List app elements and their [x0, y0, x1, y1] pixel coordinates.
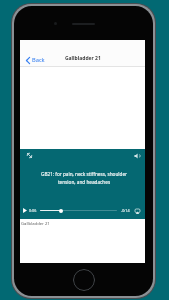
button[interactable]: Volume [134, 153, 141, 159]
staticText: Back [32, 56, 45, 64]
button[interactable]: Expand [26, 152, 33, 159]
staticText: Gallbladder 21 [65, 55, 101, 62]
staticText: -0:14 [121, 208, 130, 213]
button[interactable]: Home [73, 269, 95, 291]
staticText: GB21: for pain, neck stiffness, shoulder… [41, 171, 127, 185]
staticText: Gallbladder 21 [21, 221, 50, 227]
button[interactable]: AirPlay [135, 209, 140, 214]
button[interactable]: Back [26, 54, 45, 66]
button[interactable]: Play [23, 208, 27, 213]
staticText: 0:06 [29, 208, 37, 213]
